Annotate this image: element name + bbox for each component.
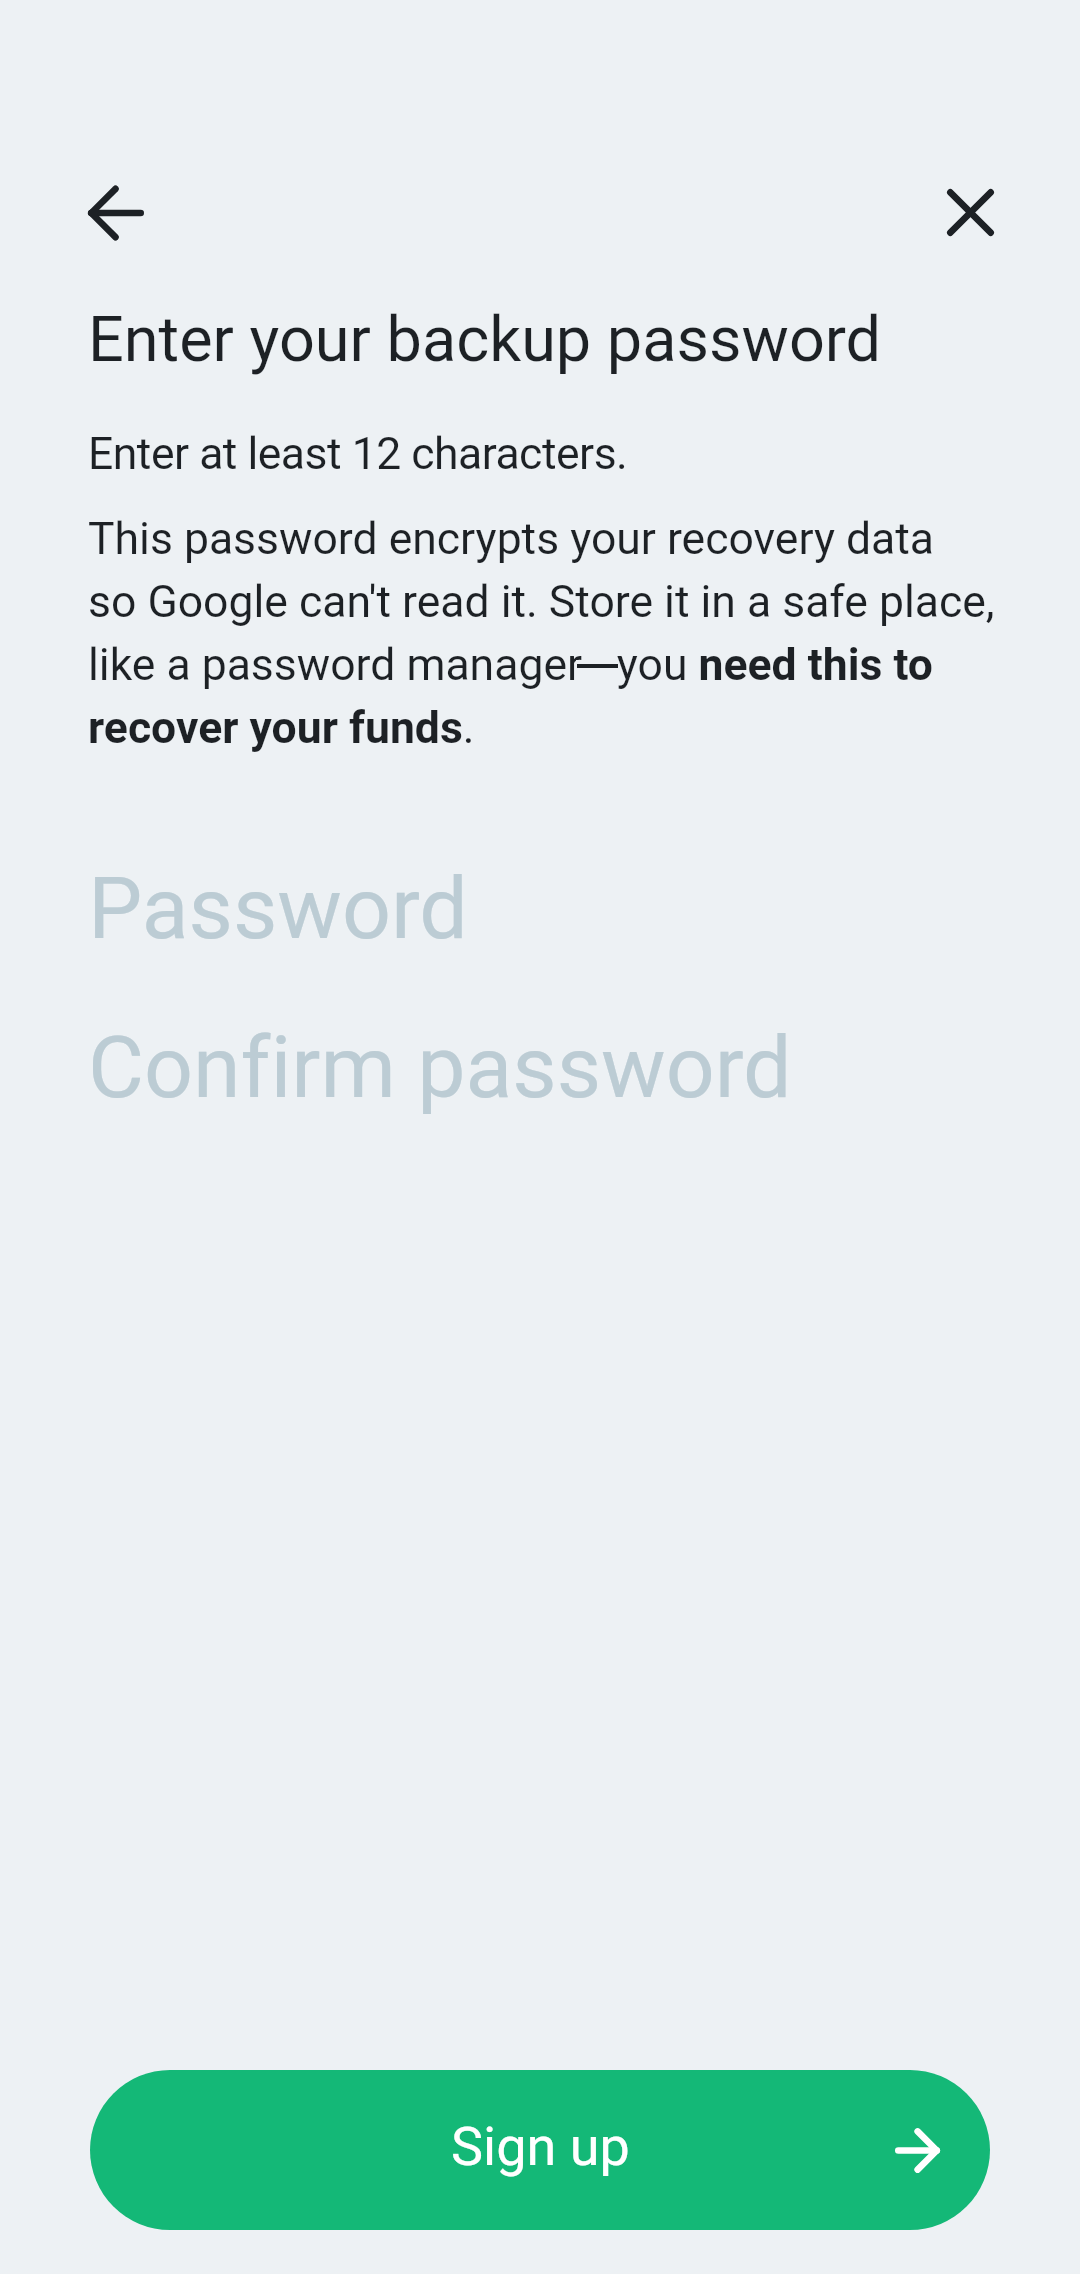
staticText: Password: [88, 858, 468, 959]
staticText: Enter your backup password: [88, 303, 882, 377]
button[interactable]: Sign up: [90, 2070, 990, 2230]
staticText: Conf‌irm password: [88, 1017, 792, 1118]
button[interactable]: Password: [0, 844, 1080, 972]
button[interactable]: Conf‌irm password: [0, 1003, 1080, 1131]
staticText: Enter at least 12 characters.: [88, 428, 628, 480]
staticText: This password encrypts your recovery dat…: [88, 513, 995, 754]
button[interactable]: Back: [62, 159, 169, 266]
staticText: Sign up: [451, 2115, 630, 2178]
button[interactable]: Close: [917, 159, 1024, 266]
